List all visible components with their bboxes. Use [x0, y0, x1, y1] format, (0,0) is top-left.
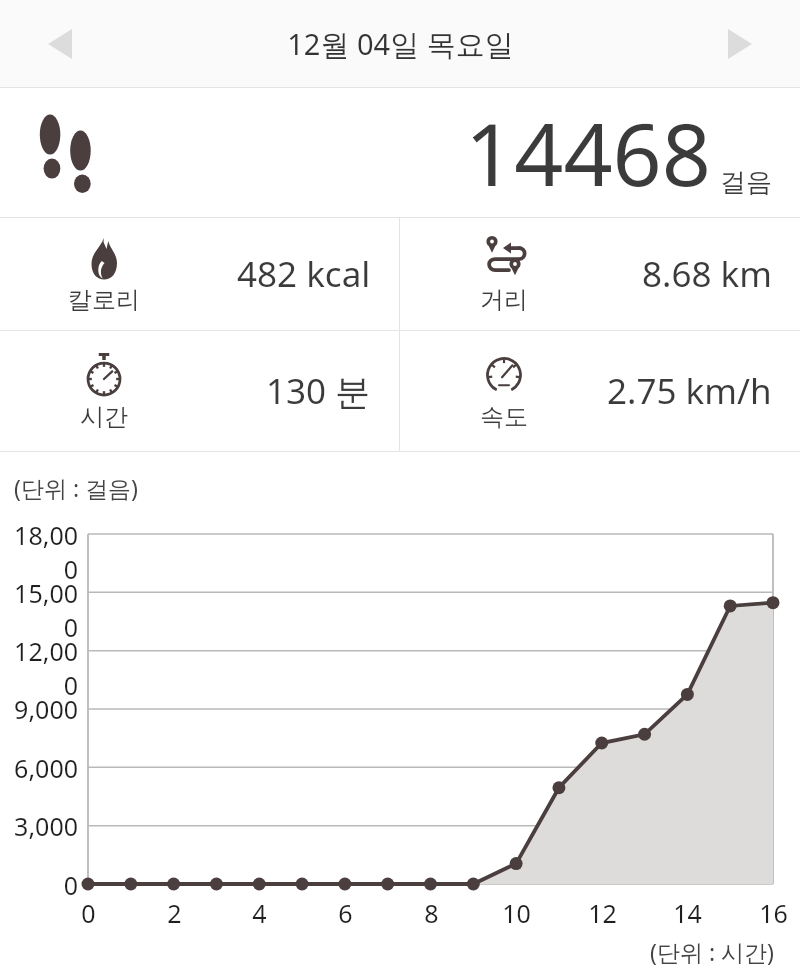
staticText: 12월 04일 목요일	[287, 24, 514, 64]
staticText: 8.68 km	[642, 250, 772, 298]
button[interactable]: 속도	[400, 331, 800, 451]
button[interactable]: 14468	[0, 88, 800, 217]
staticText: 10	[502, 896, 531, 930]
staticText: 14	[673, 896, 702, 930]
staticText: 6,000	[14, 751, 78, 785]
staticText: 0	[81, 896, 96, 930]
staticText: 4	[252, 896, 267, 930]
button[interactable]: 시간	[0, 331, 399, 451]
staticText: 482 kcal	[237, 250, 371, 298]
button[interactable]: Next day	[702, 6, 778, 82]
button[interactable]: Previous day	[22, 6, 98, 82]
staticText: 2	[167, 896, 182, 930]
button[interactable]: 거리	[400, 218, 800, 330]
staticText: 12,000	[0, 634, 78, 702]
staticText: (단위 : 시간)	[650, 936, 774, 967]
staticText: 2.75 km/h	[607, 367, 772, 415]
staticText: (단위 : 걸음)	[14, 472, 138, 503]
staticText: 거리	[480, 285, 528, 315]
staticText: 16	[759, 896, 788, 930]
staticText: 0	[63, 868, 78, 902]
staticText: 6	[338, 896, 353, 930]
staticText: 속도	[480, 402, 528, 432]
staticText: 130 분	[266, 367, 371, 415]
staticText: 8	[424, 896, 439, 930]
staticText: 3,000	[14, 809, 78, 843]
staticText: 18,000	[0, 518, 78, 586]
staticText: 시간	[80, 402, 128, 432]
button[interactable]: 칼로리	[0, 218, 399, 330]
staticText: 14468	[465, 94, 711, 211]
staticText: 걸음	[720, 166, 772, 199]
staticText: 12	[588, 896, 617, 930]
staticText: 15,000	[0, 576, 78, 644]
staticText: 칼로리	[68, 285, 140, 315]
staticText: 9,000	[14, 692, 78, 726]
